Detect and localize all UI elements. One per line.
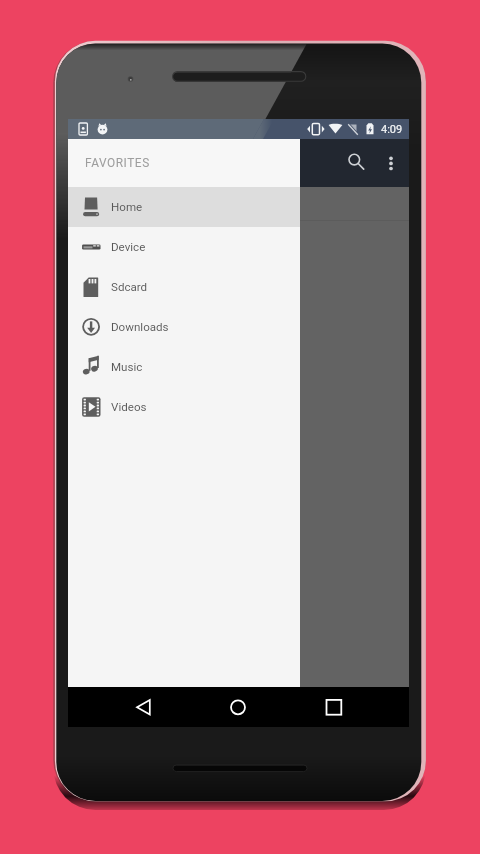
button[interactable]: Sdcard	[68, 267, 300, 307]
staticText: Videos	[111, 400, 147, 414]
staticText: FAVORITES	[85, 156, 150, 170]
button[interactable]: Device	[68, 227, 300, 267]
button[interactable]: Videos	[68, 387, 300, 427]
button[interactable]: Recent apps	[319, 694, 348, 720]
button[interactable]: More options	[381, 151, 401, 177]
button[interactable]: Home	[223, 694, 252, 720]
staticText: Home	[111, 200, 143, 214]
staticText: 4:09	[381, 123, 403, 136]
button[interactable]: Home	[68, 187, 300, 227]
button[interactable]: Downloads	[68, 307, 300, 347]
button[interactable]: Search	[347, 151, 369, 177]
staticText: Music	[111, 360, 143, 374]
staticText: Device	[111, 240, 146, 254]
button[interactable]: Music	[68, 347, 300, 387]
button[interactable]: Back	[134, 694, 165, 720]
staticText: Downloads	[111, 320, 169, 334]
staticText: Sdcard	[111, 280, 148, 294]
